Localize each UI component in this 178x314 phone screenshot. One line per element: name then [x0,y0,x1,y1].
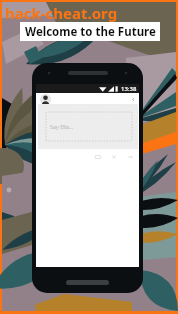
staticText: 13:38 [121,85,137,93]
staticText: Welcome to the Future [25,24,156,40]
button[interactable]: Profile [40,94,51,105]
staticText: Say Ella... [50,123,74,130]
button[interactable]: Send [126,153,134,161]
staticText: hack-cheat.org [5,3,118,23]
button[interactable]: Back [130,96,137,103]
button[interactable]: Clear [110,153,118,161]
button[interactable]: Say Ella... [46,112,132,141]
button[interactable]: Keyboard [94,153,102,161]
